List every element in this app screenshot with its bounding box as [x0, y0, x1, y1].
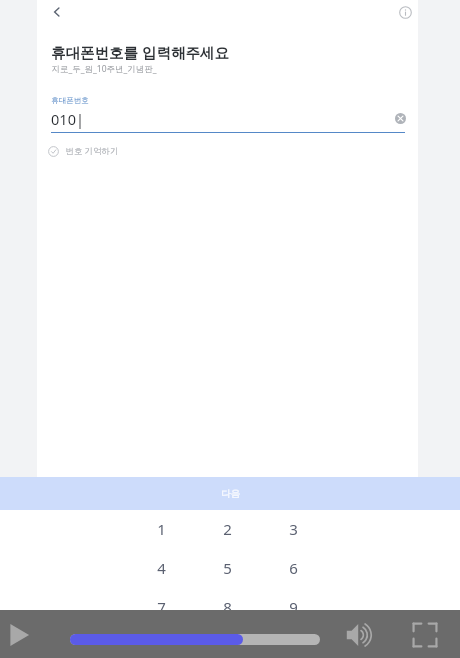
- staticText: 휴대폰번호: [51, 96, 89, 105]
- staticText: 5: [223, 558, 232, 578]
- button[interactable]: Fullscreen: [404, 618, 446, 652]
- staticText: 6: [289, 558, 298, 578]
- button[interactable]: 3: [267, 513, 319, 545]
- staticText: 9: [289, 597, 298, 617]
- button[interactable]: 5: [201, 552, 253, 584]
- staticText: 7: [157, 597, 166, 617]
- button[interactable]: Backspace: [273, 631, 313, 658]
- staticText: 8: [223, 597, 232, 617]
- staticText: 4: [157, 558, 166, 578]
- button[interactable]: Clear text: [390, 108, 410, 128]
- staticText: 지로_두_원_10주년_기념판_: [51, 63, 157, 75]
- staticText: 2: [223, 519, 232, 539]
- staticText: 휴대폰번호를 입력해주세요: [51, 42, 229, 62]
- staticText: 1: [157, 519, 166, 539]
- button[interactable]: 2: [201, 513, 253, 545]
- button[interactable]: Back: [42, 0, 72, 24]
- staticText: 3: [289, 519, 298, 539]
- button[interactable]: Volume: [339, 618, 381, 652]
- button[interactable]: 9: [267, 591, 319, 623]
- button[interactable]: 4: [135, 552, 187, 584]
- button[interactable]: 번호 기억하기: [48, 141, 119, 161]
- staticText: 010|: [51, 109, 84, 129]
- button[interactable]: Seek bar: [70, 634, 320, 645]
- button[interactable]: Information: [393, 0, 417, 24]
- staticText: 다음: [221, 488, 240, 500]
- button[interactable]: 0: [201, 629, 253, 658]
- staticText: 번호 기억하기: [65, 145, 119, 157]
- button[interactable]: Play: [2, 618, 36, 652]
- staticText: 0: [223, 635, 232, 655]
- button[interactable]: 6: [267, 552, 319, 584]
- button[interactable]: 1: [135, 513, 187, 545]
- button[interactable]: 8: [201, 591, 253, 623]
- button[interactable]: 7: [135, 591, 187, 623]
